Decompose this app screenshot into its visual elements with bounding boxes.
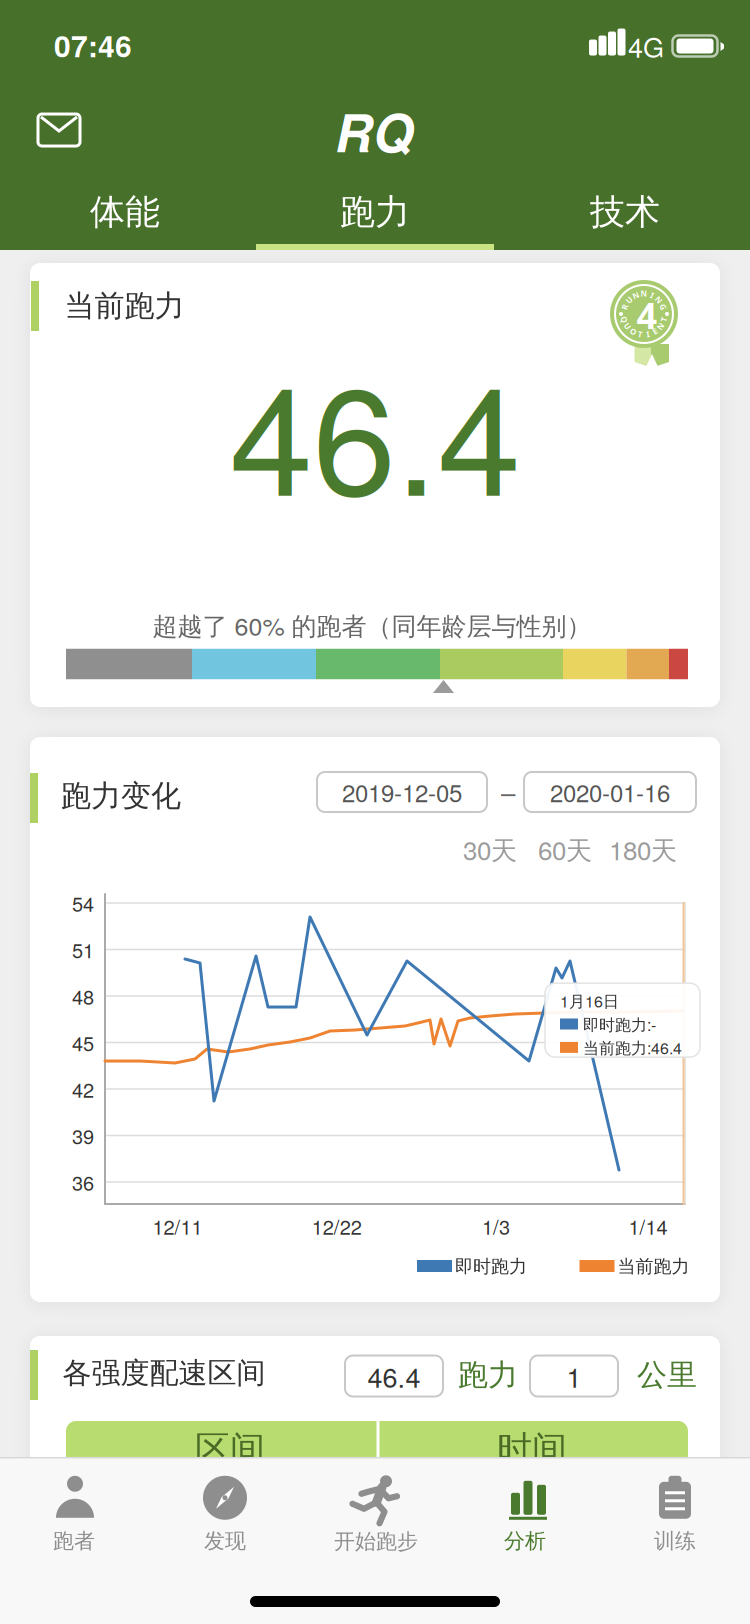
button[interactable]: 60天	[538, 830, 592, 868]
staticText: 即时跑力	[455, 1255, 527, 1278]
staticText: 42	[72, 1075, 94, 1103]
staticText: 技术	[590, 190, 660, 234]
staticText: 39	[72, 1121, 94, 1150]
staticText: Q	[621, 314, 627, 325]
button[interactable]: 跑者	[9, 1464, 139, 1564]
staticText: N	[640, 288, 647, 299]
staticText: 体能	[90, 190, 160, 234]
staticText: 跑力	[340, 190, 410, 234]
staticText: 46.4	[229, 324, 520, 538]
staticText: 开始跑步	[334, 1528, 418, 1555]
button[interactable]: 180天	[609, 830, 677, 868]
staticText: –	[501, 772, 515, 810]
button[interactable]: 2019-12-05	[317, 772, 487, 812]
staticText: 51	[72, 935, 94, 964]
staticText: N	[657, 321, 664, 331]
staticText: E	[653, 326, 657, 337]
staticText: 各强度配速区间	[62, 1355, 265, 1391]
staticText: I	[651, 290, 654, 300]
staticText: N	[655, 295, 662, 305]
staticText: 45	[72, 1028, 94, 1057]
staticText: T	[638, 329, 643, 339]
staticText: 36	[72, 1168, 94, 1196]
button[interactable]: 训练	[610, 1464, 740, 1564]
button[interactable]: 发现	[160, 1464, 290, 1564]
button[interactable]: 分析	[460, 1464, 590, 1564]
staticText: 1月16日	[560, 989, 619, 1012]
button[interactable]: Messages	[38, 114, 80, 146]
staticText: 48	[72, 982, 94, 1010]
staticText: 1/3	[482, 1212, 510, 1240]
staticText: 1/14	[628, 1212, 667, 1240]
staticText: O	[630, 326, 636, 337]
staticText: G	[660, 302, 666, 312]
staticText: 区间	[195, 1427, 265, 1471]
staticText: 2020-01-16	[550, 775, 670, 809]
button[interactable]: 开始跑步	[296, 1464, 456, 1564]
staticText: 07:46	[54, 23, 132, 66]
staticText: 180天	[609, 830, 677, 868]
staticText: 2019-12-05	[342, 775, 462, 809]
staticText: RQ	[335, 94, 413, 168]
staticText: 54	[72, 889, 94, 917]
staticText: 4	[636, 291, 657, 339]
staticText: 跑力	[458, 1356, 518, 1394]
staticText: 60天	[538, 830, 592, 868]
staticText: 训练	[654, 1528, 696, 1554]
staticText: 30天	[463, 830, 517, 868]
staticText: 发现	[204, 1528, 246, 1554]
staticText: 当前跑力:46.4	[583, 1036, 682, 1059]
button[interactable]: 1	[530, 1355, 618, 1396]
staticText: 时间	[497, 1427, 567, 1471]
staticText: 跑者	[53, 1528, 95, 1554]
staticText: T	[661, 314, 666, 325]
staticText: 12/22	[312, 1212, 362, 1240]
button[interactable]: 跑力	[250, 180, 500, 244]
staticText: 当前跑力	[617, 1255, 689, 1278]
button[interactable]: 2020-01-16	[524, 772, 696, 812]
staticText: 46.4	[367, 1357, 420, 1395]
staticText: 超越了 60% 的跑者（同年龄层与性别）	[152, 607, 591, 643]
staticText: N	[632, 290, 639, 300]
button[interactable]: 30天	[463, 830, 517, 868]
button[interactable]: 46.4	[345, 1355, 443, 1396]
staticText: 跑力变化	[61, 777, 181, 815]
staticText: 1	[566, 1357, 581, 1395]
button[interactable]: 体能	[0, 180, 250, 244]
staticText: I	[646, 329, 649, 339]
staticText: 即时跑力:-	[583, 1012, 656, 1035]
staticText: 分析	[504, 1528, 546, 1554]
staticText: 4G	[628, 27, 664, 65]
staticText: 12/11	[152, 1212, 202, 1240]
staticText: R	[622, 302, 627, 312]
staticText: U	[624, 321, 630, 331]
staticText: U	[626, 295, 632, 305]
button[interactable]: 技术	[500, 180, 750, 244]
staticText: 当前跑力	[64, 287, 184, 325]
staticText: 公里	[637, 1356, 697, 1394]
